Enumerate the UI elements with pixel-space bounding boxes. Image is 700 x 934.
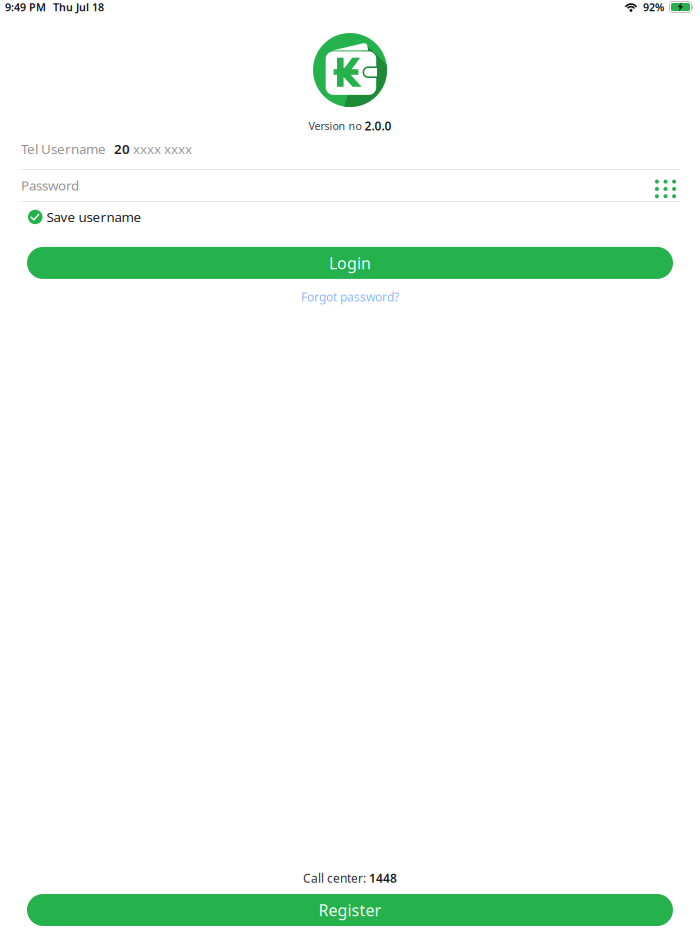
staticText: 1448 [369,870,397,886]
button[interactable]: Register [0,894,700,926]
staticText: 92% [643,0,664,14]
staticText: Register [318,899,381,921]
staticText: Version no [308,119,364,133]
staticText: Save username [46,208,141,226]
staticText: 9:49 PM [5,0,46,14]
button[interactable]: Tel Username [21,140,680,169]
staticText: Password [21,177,79,194]
staticText: Forgot password? [301,289,399,305]
button[interactable]: Forgot password? [291,279,409,309]
staticText: Thu Jul 18 [53,0,104,14]
staticText: Login [329,252,371,273]
button[interactable]: Password [21,170,659,201]
staticText: Tel Username [21,140,106,158]
staticText: 20 [114,140,130,158]
staticText: Call center: [303,870,369,886]
button[interactable]: Login [0,247,700,279]
button[interactable]: Show keypad [659,176,680,194]
button[interactable]: Save username [0,206,700,228]
staticText: 2.0.0 [364,118,391,134]
staticText: xxxx xxxx [133,140,192,158]
